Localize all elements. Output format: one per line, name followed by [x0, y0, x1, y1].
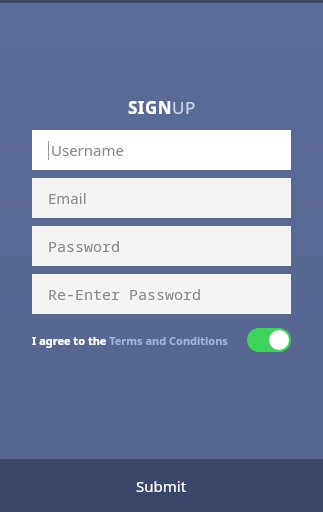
staticText: Username: [51, 140, 124, 160]
staticText: Password: [48, 236, 121, 256]
button[interactable]: Agree to terms toggle: [247, 328, 291, 352]
button[interactable]: Re-Enter Password: [32, 274, 291, 314]
staticText: Submit: [136, 476, 187, 496]
button[interactable]: Password: [32, 226, 291, 266]
staticText: Re-Enter Password: [48, 284, 202, 304]
button[interactable]: Username: [32, 130, 291, 170]
button[interactable]: Submit: [0, 459, 323, 512]
staticText: SIGNUP: [128, 96, 196, 119]
button[interactable]: I agree to the Terms and Conditions: [32, 333, 228, 348]
button[interactable]: Email: [32, 178, 291, 218]
staticText: Email: [48, 188, 87, 208]
